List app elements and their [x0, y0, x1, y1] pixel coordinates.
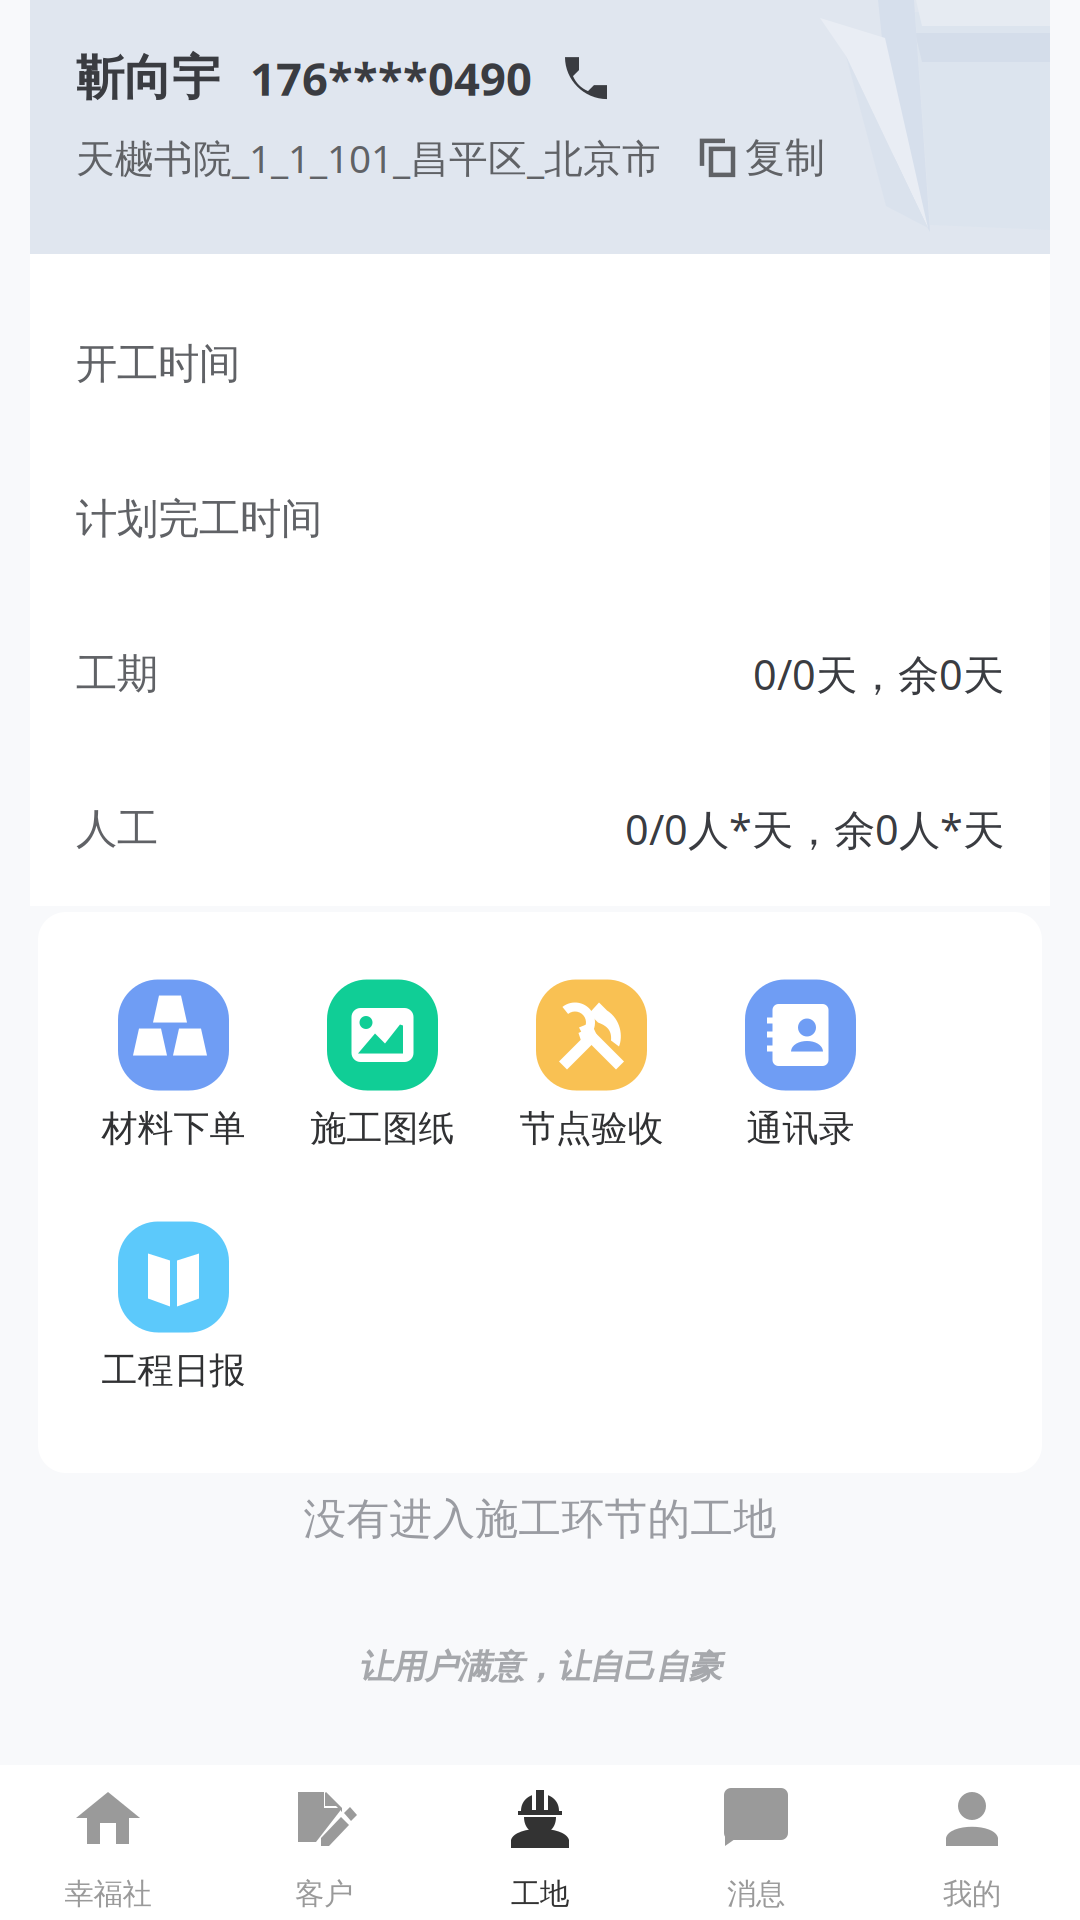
staticText: 没有进入施工环节的工地: [303, 1493, 776, 1545]
staticText: 天樾书院_1_1_101_昌平区_北京市: [76, 132, 661, 183]
staticText: 工期: [76, 649, 158, 699]
button[interactable]: 客户: [216, 1765, 432, 1920]
button[interactable]: 幸福社: [0, 1765, 216, 1920]
button[interactable]: 消息: [648, 1765, 864, 1920]
button[interactable]: 材料下单: [69, 979, 278, 1179]
staticText: 消息: [727, 1876, 785, 1912]
staticText: 通讯录: [746, 1106, 854, 1151]
staticText: 我的: [943, 1876, 1001, 1912]
button[interactable]: 节点验收: [487, 979, 696, 1179]
staticText: 开工时间: [76, 339, 240, 389]
staticText: 靳向宇: [76, 49, 220, 108]
button[interactable]: 计划完工时间: [30, 441, 1050, 596]
staticText: 客户: [295, 1876, 353, 1912]
staticText: 复制: [745, 133, 825, 182]
staticText: 工地: [511, 1876, 569, 1912]
staticText: 人工: [76, 804, 158, 854]
button[interactable]: 人工: [30, 751, 1050, 906]
staticText: 施工图纸: [310, 1106, 454, 1151]
staticText: 0/0天，余0天: [753, 647, 1004, 701]
button[interactable]: 施工图纸: [278, 979, 487, 1179]
staticText: 幸福社: [64, 1876, 151, 1912]
button[interactable]: 我的: [864, 1765, 1080, 1920]
staticText: 工程日报: [101, 1348, 245, 1393]
staticText: 176****0490: [250, 48, 532, 108]
button[interactable]: 通讯录: [696, 979, 905, 1179]
button[interactable]: 工程日报: [69, 1221, 278, 1421]
button[interactable]: 开工时间: [30, 286, 1050, 441]
button[interactable]: 复制: [661, 133, 825, 182]
staticText: 计划完工时间: [76, 494, 322, 544]
staticText: 节点验收: [519, 1106, 663, 1151]
staticText: 0/0人*天，余0人*天: [625, 802, 1004, 856]
staticText: 材料下单: [101, 1106, 245, 1151]
button[interactable]: 拨打电话: [532, 55, 619, 101]
button[interactable]: 工期: [30, 596, 1050, 751]
button[interactable]: 工地: [432, 1765, 648, 1920]
staticText: 让用户满意，让自己自豪: [358, 1646, 721, 1687]
